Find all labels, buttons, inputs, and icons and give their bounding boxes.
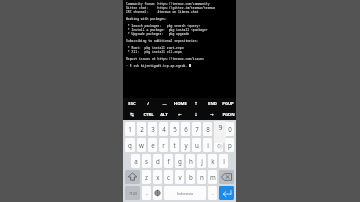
staticText: j bbox=[201, 157, 203, 165]
button[interactable]: . bbox=[208, 186, 217, 200]
staticText: t bbox=[173, 141, 176, 149]
button[interactable]: Indonesia bbox=[164, 186, 206, 200]
button[interactable]: j bbox=[197, 154, 206, 168]
staticText: Report issues at https://termux.com/issu… bbox=[126, 57, 204, 61]
button[interactable]: w bbox=[137, 138, 146, 152]
button[interactable]: p bbox=[225, 138, 234, 152]
staticText: i bbox=[207, 141, 209, 149]
staticText: h bbox=[189, 157, 193, 165]
button[interactable]: CTRL bbox=[140, 109, 156, 120]
button[interactable]: 8 bbox=[203, 122, 212, 136]
staticText: q bbox=[128, 141, 132, 149]
staticText: k bbox=[211, 157, 215, 165]
staticText: 1 bbox=[128, 125, 132, 133]
button[interactable]: b bbox=[186, 170, 195, 184]
staticText: , bbox=[146, 189, 148, 197]
staticText: 9 bbox=[217, 125, 221, 133]
button[interactable]: Shift bbox=[125, 170, 140, 184]
button[interactable]: n bbox=[197, 170, 206, 184]
button[interactable]: ↹ bbox=[123, 109, 140, 120]
staticText: ← bbox=[178, 112, 182, 117]
button[interactable]: q bbox=[125, 138, 135, 152]
staticText: ↑ bbox=[194, 101, 198, 106]
button[interactable]: 6 bbox=[181, 122, 190, 136]
staticText: 4 bbox=[162, 125, 166, 133]
staticText: CTRL bbox=[143, 112, 154, 118]
button[interactable]: Backspace bbox=[219, 170, 234, 184]
button[interactable]: 5 bbox=[170, 122, 179, 136]
staticText: e bbox=[151, 141, 155, 149]
button[interactable]: PGUP bbox=[220, 98, 236, 109]
button[interactable]: i bbox=[203, 138, 212, 152]
button[interactable]: u bbox=[192, 138, 201, 152]
staticText: — bbox=[162, 101, 167, 107]
button[interactable]: / bbox=[140, 98, 156, 109]
staticText: w bbox=[139, 141, 144, 149]
button[interactable]: a bbox=[131, 154, 140, 168]
button[interactable]: c bbox=[164, 170, 173, 184]
button[interactable]: ← bbox=[172, 109, 188, 120]
button[interactable]: o bbox=[214, 138, 223, 152]
button[interactable]: ALT bbox=[156, 109, 172, 120]
button[interactable]: x bbox=[153, 170, 162, 184]
staticText: n bbox=[200, 173, 204, 181]
staticText: Working with packages: bbox=[126, 17, 167, 21]
staticText: ~ $ ssh bijentigodt.tcp.ap.ngrok. bbox=[126, 64, 188, 68]
button[interactable]: — bbox=[156, 98, 172, 109]
staticText: * X11: pkg install x11-repo bbox=[126, 50, 182, 54]
staticText: p bbox=[228, 141, 232, 149]
button[interactable]: END bbox=[204, 98, 220, 109]
staticText: ↹ bbox=[130, 112, 134, 117]
button[interactable]: y bbox=[181, 138, 190, 152]
button[interactable]: m bbox=[208, 170, 217, 184]
staticText: * Search packages: pkg search <query> bbox=[126, 24, 201, 28]
button[interactable]: l bbox=[219, 154, 228, 168]
staticText: . bbox=[212, 189, 214, 197]
staticText: * Root: pkg install root-repo bbox=[126, 46, 184, 50]
button[interactable]: → bbox=[204, 109, 220, 120]
button[interactable]: Enter bbox=[219, 186, 234, 200]
button[interactable]: ↓ bbox=[188, 109, 204, 120]
button[interactable]: 2 bbox=[137, 122, 146, 136]
button[interactable]: 7 bbox=[192, 122, 201, 136]
button[interactable]: k bbox=[208, 154, 217, 168]
staticText: ALT bbox=[160, 112, 168, 118]
staticText: 8 bbox=[206, 125, 210, 133]
staticText: m bbox=[210, 173, 216, 181]
button[interactable]: 0 bbox=[225, 122, 234, 136]
staticText: / bbox=[147, 101, 149, 107]
button[interactable]: , bbox=[142, 186, 151, 200]
staticText: s bbox=[145, 157, 148, 165]
button[interactable]: d bbox=[153, 154, 162, 168]
button[interactable]: f bbox=[164, 154, 173, 168]
staticText: d bbox=[156, 157, 160, 165]
button[interactable]: ↑ bbox=[188, 98, 204, 109]
button[interactable]: PGDN bbox=[220, 109, 236, 120]
button[interactable]: 1 bbox=[125, 122, 135, 136]
staticText: ↓ bbox=[194, 112, 198, 117]
staticText: 7 bbox=[195, 125, 199, 133]
staticText: r bbox=[162, 141, 165, 149]
button[interactable]: ?123 bbox=[125, 186, 140, 200]
staticText: * Install a package: pkg install <packag… bbox=[126, 28, 208, 32]
staticText: Gitter chat: https://gitter.im/termux/te… bbox=[126, 6, 216, 10]
staticText: → bbox=[210, 112, 214, 117]
button[interactable]: Change language bbox=[153, 186, 162, 200]
button[interactable]: s bbox=[142, 154, 151, 168]
button[interactable]: g bbox=[175, 154, 184, 168]
staticText: ?123 bbox=[129, 191, 137, 196]
button[interactable]: ESC bbox=[123, 98, 140, 109]
button[interactable]: 9 bbox=[214, 122, 223, 136]
staticText: Community forum: https://termux.com/comm… bbox=[126, 2, 210, 6]
staticText: * Upgrade packages: pkg upgrade bbox=[126, 32, 190, 36]
button[interactable]: r bbox=[159, 138, 168, 152]
button[interactable]: v bbox=[175, 170, 184, 184]
button[interactable]: e bbox=[148, 138, 157, 152]
button[interactable]: z bbox=[142, 170, 151, 184]
button[interactable]: t bbox=[170, 138, 179, 152]
button[interactable]: h bbox=[186, 154, 195, 168]
button[interactable]: 3 bbox=[148, 122, 157, 136]
staticText: 2 bbox=[140, 125, 144, 133]
button[interactable]: HOME bbox=[172, 98, 188, 109]
button[interactable]: 4 bbox=[159, 122, 168, 136]
